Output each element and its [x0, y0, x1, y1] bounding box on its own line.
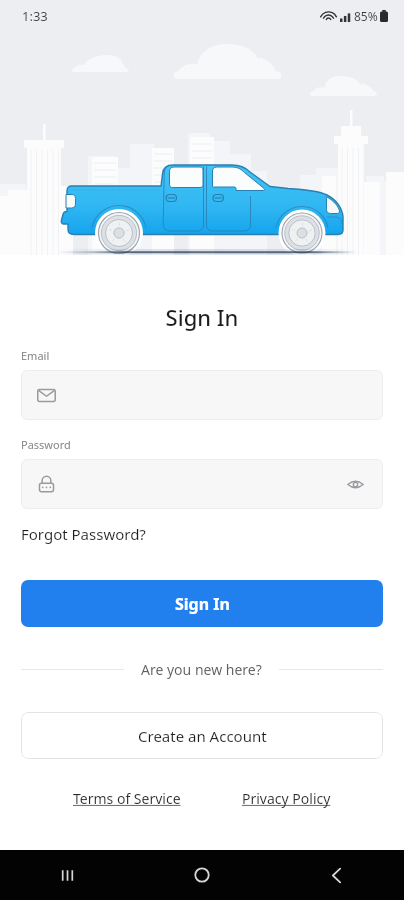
staticText: Privacy Policy	[242, 789, 331, 808]
button[interactable]: Privacy Policy	[242, 789, 331, 808]
button[interactable]: Sign In	[21, 580, 383, 627]
staticText: Forgot Password?	[21, 524, 146, 544]
button[interactable]: Back	[269, 850, 404, 900]
staticText: Email	[21, 348, 50, 363]
button[interactable]	[21, 370, 383, 420]
staticText: Sign In	[21, 302, 383, 332]
button[interactable]: Show password	[21, 459, 383, 509]
staticText: Sign In	[175, 593, 230, 615]
staticText: 1:33	[22, 7, 48, 25]
staticText: Create an Account	[138, 726, 267, 746]
staticText: 85%	[354, 8, 378, 24]
button[interactable]: Show password	[339, 468, 371, 500]
staticText: Password	[21, 437, 71, 452]
button[interactable]: Terms of Service	[73, 789, 181, 808]
button[interactable]: Create an Account	[21, 712, 383, 759]
button[interactable]: Forgot Password?	[21, 524, 146, 544]
button[interactable]: Home	[134, 850, 269, 900]
staticText: Are you new here?	[141, 660, 262, 679]
staticText: Terms of Service	[73, 789, 181, 808]
button[interactable]: Recents	[0, 850, 134, 900]
